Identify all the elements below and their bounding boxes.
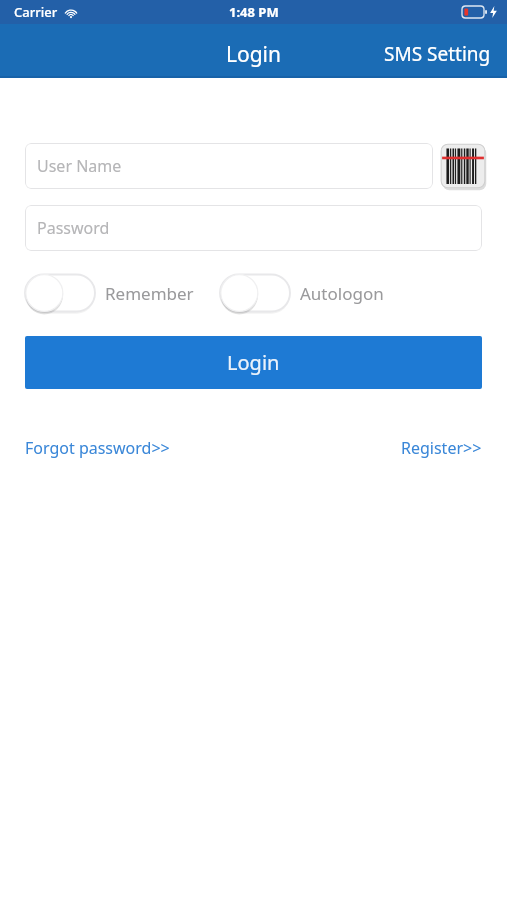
button[interactable]: Autologon [220, 272, 384, 314]
staticText: Forgot password>> [25, 437, 170, 459]
staticText: Password [37, 217, 110, 239]
staticText: Login [226, 40, 282, 69]
button[interactable]: Register>> [401, 431, 482, 465]
staticText: User Name [37, 155, 122, 177]
staticText: Carrier [14, 3, 58, 21]
button[interactable]: SMS Setting [368, 33, 507, 75]
staticText: SMS Setting [384, 41, 491, 67]
button[interactable]: Scan barcode [439, 142, 487, 190]
staticText: Register>> [401, 437, 482, 459]
staticText: Remember [105, 282, 194, 305]
button[interactable]: Remember [25, 272, 194, 314]
staticText: Autologon [300, 282, 384, 305]
button[interactable]: Forgot password>> [25, 431, 170, 465]
button[interactable]: Password [25, 205, 482, 251]
staticText: Login [227, 349, 280, 376]
button[interactable]: Login [25, 336, 482, 389]
staticText: 1:48 PM [229, 3, 279, 21]
button[interactable]: User Name [25, 143, 433, 189]
